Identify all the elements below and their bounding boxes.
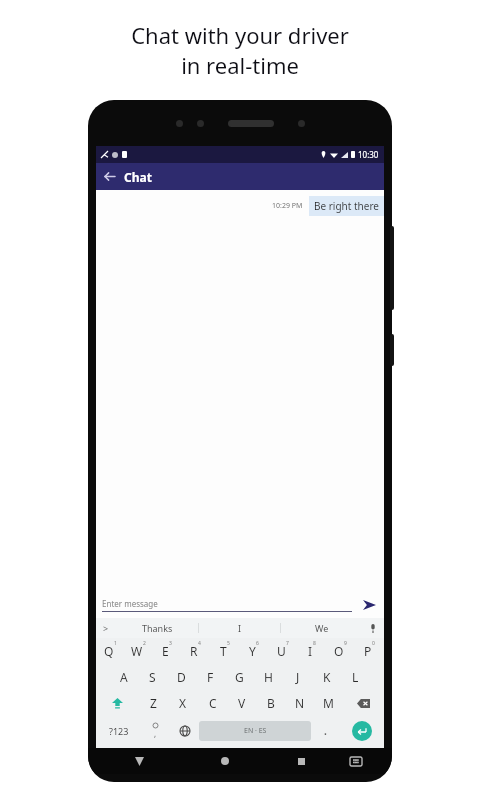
button[interactable]: ?123 [96, 716, 141, 746]
staticText: W [131, 643, 143, 659]
staticText: I [308, 643, 313, 659]
button[interactable]: B [256, 690, 285, 716]
staticText: O [334, 643, 344, 659]
staticText: P [364, 643, 372, 659]
button[interactable]: G [225, 664, 254, 690]
button[interactable]: N [285, 690, 314, 716]
staticText: Enter message [102, 598, 158, 609]
staticText: Chat with your driver in real-time [131, 20, 349, 80]
staticText: L [352, 669, 359, 685]
staticText: 6 [256, 640, 259, 647]
staticText: S [149, 669, 156, 685]
staticText: N [295, 695, 305, 711]
staticText: 2 [143, 640, 146, 647]
staticText: F [207, 669, 214, 685]
button[interactable]: S [138, 664, 167, 690]
button[interactable]: K [312, 664, 341, 690]
button[interactable]: Recent apps [291, 751, 311, 771]
staticText: B [267, 695, 275, 711]
button[interactable]: Change language [170, 716, 199, 746]
staticText: 8 [313, 640, 316, 647]
staticText: Z [150, 695, 157, 711]
button[interactable]: Enter [340, 716, 384, 746]
button[interactable]: X [168, 690, 198, 716]
button[interactable]: J [283, 664, 312, 690]
staticText: 0 [372, 640, 375, 647]
button[interactable]: L [341, 664, 370, 690]
button[interactable]: Switch keyboard [346, 751, 366, 771]
staticText: K [323, 669, 331, 685]
staticText: ?123 [109, 725, 129, 737]
button[interactable]: Home [215, 751, 235, 771]
button[interactable]: M [314, 690, 343, 716]
button[interactable]: V [227, 690, 256, 716]
button[interactable]: H [254, 664, 283, 690]
staticText: U [277, 643, 286, 659]
staticText: We [315, 622, 329, 634]
staticText: Be right there [314, 199, 379, 213]
staticText: 3 [169, 640, 172, 647]
staticText: H [264, 669, 273, 685]
button[interactable]: Enter message [102, 598, 352, 612]
staticText: R [190, 643, 198, 659]
button[interactable]: I [297, 638, 326, 664]
staticText: G [235, 669, 244, 685]
button[interactable]: C [198, 690, 227, 716]
staticText: Y [249, 643, 256, 659]
button[interactable]: Navigate up [96, 163, 123, 190]
staticText: 10:29 PM [272, 201, 303, 211]
staticText: T [220, 643, 227, 659]
button[interactable]: Y [239, 638, 268, 664]
button[interactable]: Z [138, 690, 168, 716]
button[interactable]: Send [360, 596, 378, 614]
button[interactable]: I [199, 618, 280, 638]
staticText: Q [104, 643, 114, 659]
button[interactable]: Delete [343, 690, 384, 716]
staticText: . [324, 724, 327, 738]
staticText: Chat [124, 169, 152, 185]
staticText: V [238, 695, 246, 711]
button[interactable]: T [210, 638, 239, 664]
staticText: 5 [227, 640, 230, 647]
button[interactable]: O [326, 638, 355, 664]
button[interactable]: W [124, 638, 152, 664]
button[interactable]: Q [96, 638, 124, 664]
button[interactable]: A [109, 664, 138, 690]
staticText: D [177, 669, 186, 685]
staticText: EN · ES [244, 726, 267, 736]
staticText: 9 [344, 640, 347, 647]
staticText: 1 [114, 640, 117, 647]
button[interactable]: P [355, 638, 384, 664]
staticText: A [120, 669, 128, 685]
button[interactable]: . [311, 716, 340, 746]
button[interactable]: F [196, 664, 225, 690]
button[interactable]: Emoji [141, 716, 170, 746]
staticText: 4 [198, 640, 201, 647]
staticText: Thanks [142, 622, 173, 634]
button[interactable]: EN · ES [199, 721, 311, 741]
staticText: C [209, 695, 217, 711]
staticText: E [162, 643, 169, 659]
staticText: I [238, 622, 242, 634]
button[interactable]: Voice input [362, 618, 384, 638]
button[interactable]: U [268, 638, 297, 664]
staticText: J [296, 669, 300, 685]
staticText: > [103, 622, 109, 634]
staticText: M [323, 695, 334, 711]
button[interactable]: R [181, 638, 210, 664]
button[interactable]: Shift [96, 690, 138, 716]
staticText: , [154, 728, 157, 739]
staticText: 7 [286, 640, 289, 647]
button[interactable]: E [152, 638, 181, 664]
button[interactable]: D [167, 664, 196, 690]
staticText: 10:30 [358, 149, 379, 160]
button[interactable]: We [281, 618, 362, 638]
staticText: X [179, 695, 187, 711]
button[interactable]: Thanks [116, 618, 198, 638]
button[interactable]: Back [129, 751, 149, 771]
button[interactable]: Expand toolbar [96, 618, 116, 638]
